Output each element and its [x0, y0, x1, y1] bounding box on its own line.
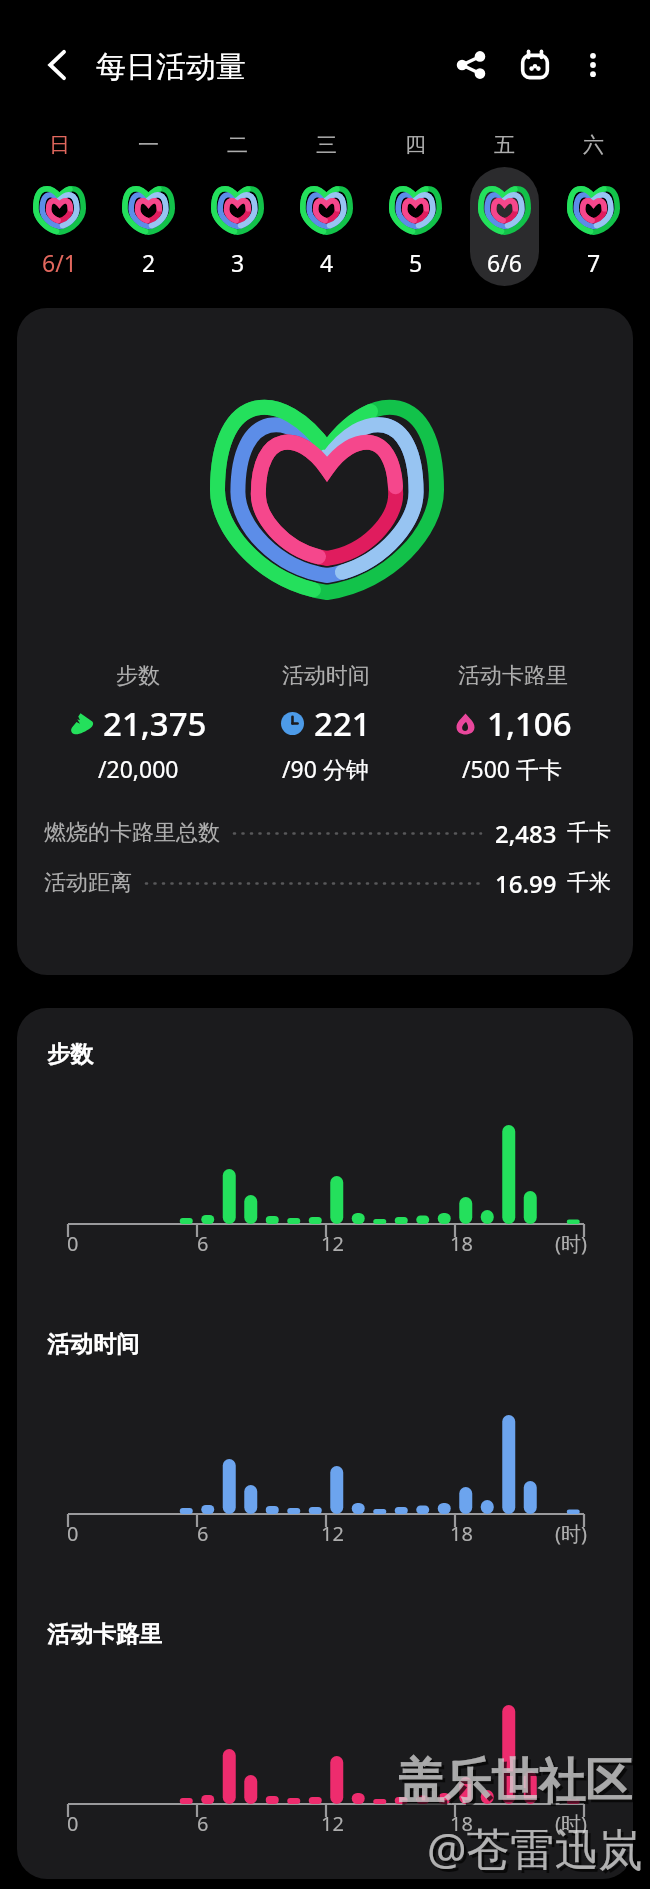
staticText: 活动距离 [44, 869, 132, 897]
staticText: 千卡 [567, 819, 611, 847]
button[interactable]: 燃烧的卡路里总数 [44, 816, 611, 850]
staticText: (时) [555, 1520, 587, 1547]
staticText: /500 千卡 [462, 753, 563, 784]
staticText: 千米 [567, 869, 611, 897]
button[interactable]: 活动距离 [44, 866, 611, 900]
staticText: 1,106 [487, 701, 572, 746]
button[interactable]: Back [32, 40, 82, 90]
button[interactable]: 活动卡路里 [419, 662, 606, 784]
staticText: 12 [321, 1230, 344, 1257]
button[interactable]: 6/6 [470, 167, 539, 286]
staticText: 5 [409, 247, 423, 278]
staticText: 2 [142, 247, 156, 278]
button[interactable]: 4 [292, 167, 361, 286]
staticText: 步数 [116, 662, 160, 690]
staticText: 6 [197, 1520, 209, 1547]
staticText: 2,483 [495, 817, 557, 850]
button[interactable]: 5 [381, 167, 450, 286]
staticText: 18 [450, 1520, 473, 1547]
button[interactable]: 活动卡路里 [17, 1588, 633, 1878]
staticText: 活动时间 [282, 662, 370, 690]
staticText: 二 [227, 132, 248, 158]
staticText: /90 分钟 [282, 753, 369, 784]
staticText: 步数 [47, 1040, 93, 1069]
staticText: 16.99 [495, 867, 557, 900]
staticText: 6/6 [487, 247, 522, 278]
staticText: 日 [49, 132, 70, 158]
staticText: 0 [67, 1520, 79, 1547]
staticText: 活动时间 [47, 1330, 139, 1359]
staticText: 五 [494, 132, 515, 158]
staticText: 盖乐世社区 [397, 1752, 632, 1811]
staticText: 四 [405, 132, 426, 158]
staticText: 6 [197, 1810, 209, 1837]
staticText: 每日活动量 [96, 48, 246, 86]
button[interactable]: 2 [114, 167, 183, 286]
staticText: 12 [321, 1520, 344, 1547]
button[interactable]: 步数 [17, 308, 633, 975]
staticText: 221 [314, 701, 371, 746]
button[interactable]: 活动时间 [232, 662, 419, 784]
staticText: @苍雷迅岚 [427, 1818, 643, 1878]
staticText: 0 [67, 1810, 79, 1837]
staticText: 燃烧的卡路里总数 [44, 819, 220, 847]
button[interactable]: 7 [559, 167, 628, 286]
staticText: 活动卡路里 [47, 1620, 162, 1649]
button[interactable]: 3 [203, 167, 272, 286]
button[interactable]: Calendar [506, 36, 564, 94]
staticText: (时) [555, 1810, 587, 1837]
staticText: 6 [197, 1230, 209, 1257]
staticText: (时) [555, 1230, 587, 1257]
staticText: 三 [316, 132, 337, 158]
staticText: 21,375 [103, 701, 207, 746]
staticText: 18 [450, 1810, 473, 1837]
staticText: 0 [67, 1230, 79, 1257]
staticText: 12 [321, 1810, 344, 1837]
button[interactable]: More options [564, 36, 622, 94]
staticText: 7 [587, 247, 601, 278]
staticText: 六 [583, 132, 604, 158]
button[interactable]: 6/1 [25, 167, 94, 286]
staticText: 活动卡路里 [458, 662, 568, 690]
button[interactable]: 步数 [44, 662, 232, 784]
button[interactable]: 步数 [17, 1008, 633, 1298]
button[interactable]: 活动时间 [17, 1298, 633, 1588]
button[interactable]: Share [442, 36, 500, 94]
staticText: 18 [450, 1230, 473, 1257]
staticText: 6/1 [42, 247, 77, 278]
staticText: 盖乐世社区 [400, 1755, 635, 1814]
staticText: 3 [231, 247, 245, 278]
staticText: 4 [320, 247, 334, 278]
staticText: 一 [138, 132, 159, 158]
staticText: /20,000 [98, 753, 179, 784]
staticText: @苍雷迅岚 [430, 1821, 646, 1881]
